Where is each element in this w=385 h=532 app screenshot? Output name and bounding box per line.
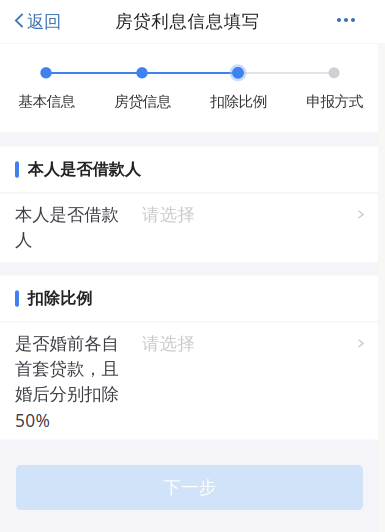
staticText: 本人是否借款人 <box>28 159 141 179</box>
staticText: 是否婚前各自首套贷款，且婚后分别扣除50% <box>15 333 118 432</box>
staticText: 房贷信息 <box>114 92 172 110</box>
staticText: 扣除比例 <box>210 92 268 110</box>
staticText: 请选择 <box>142 204 195 225</box>
button[interactable]: 本人是否借款人 <box>0 193 378 262</box>
staticText: 下一步 <box>163 477 216 498</box>
button[interactable]: 是否婚前各自首套贷款，且婚后分别扣除50% <box>0 322 378 439</box>
button[interactable]: 返回 <box>0 0 78 43</box>
button[interactable]: 更多操作 <box>0 0 48 43</box>
staticText: 房贷利息信息填写 <box>115 11 259 32</box>
button[interactable]: 下一步 <box>0 465 347 510</box>
staticText: 请选择 <box>142 333 195 354</box>
staticText: 返回 <box>27 11 61 32</box>
staticText: 本人是否借款人 <box>15 204 118 251</box>
staticText: 扣除比例 <box>28 288 92 308</box>
staticText: 申报方式 <box>306 92 364 110</box>
staticText: 基本信息 <box>18 92 76 110</box>
